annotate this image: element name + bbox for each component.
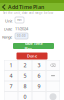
staticText: Set the unit, date and range below xyxy=(3,11,53,15)
staticText: Range xyxy=(2,34,12,40)
button[interactable]: min xyxy=(15,17,24,23)
staticText: 00:00 xyxy=(17,34,26,38)
staticText: 0 xyxy=(23,93,26,100)
staticText: Done xyxy=(27,53,37,59)
button[interactable]: Done xyxy=(16,52,47,59)
button[interactable]: 3 xyxy=(32,60,45,70)
staticText: 2 xyxy=(23,62,26,69)
button[interactable]: 7 xyxy=(4,81,17,91)
staticText: 9 xyxy=(37,83,40,90)
staticText: Unit xyxy=(5,18,12,24)
staticText: Save Time Plan xyxy=(24,41,42,51)
staticText: 1 xyxy=(9,62,12,69)
staticText: 8 xyxy=(23,83,26,90)
button[interactable]: 00:00 xyxy=(15,33,28,39)
button[interactable]: Key xyxy=(46,71,59,80)
button[interactable]: Delete xyxy=(46,60,59,70)
button[interactable]: 2 xyxy=(18,60,31,70)
staticText: Date xyxy=(4,26,12,32)
button[interactable]: Enter xyxy=(46,92,59,100)
staticText: 5 xyxy=(23,72,26,79)
button[interactable]: Save Time Plan xyxy=(13,43,54,49)
staticText: 6 xyxy=(37,72,40,79)
staticText: 3 xyxy=(37,62,40,69)
button[interactable]: 8 xyxy=(18,81,31,91)
staticText: min xyxy=(17,18,22,22)
staticText: Add Time Plan xyxy=(8,3,44,11)
staticText: ⌫ xyxy=(50,63,56,67)
button[interactable]: 9 xyxy=(32,81,45,91)
staticText: 4 xyxy=(9,72,12,79)
button[interactable]: 1 xyxy=(4,60,17,70)
button[interactable]: 6 xyxy=(32,71,45,80)
button[interactable]: Back xyxy=(0,4,6,10)
staticText: 11/2024 xyxy=(15,26,28,31)
button[interactable]: 4 xyxy=(4,71,17,80)
button[interactable]: 0 xyxy=(18,92,31,100)
staticText: 7 xyxy=(9,83,12,90)
button[interactable]: 5 xyxy=(18,71,31,80)
